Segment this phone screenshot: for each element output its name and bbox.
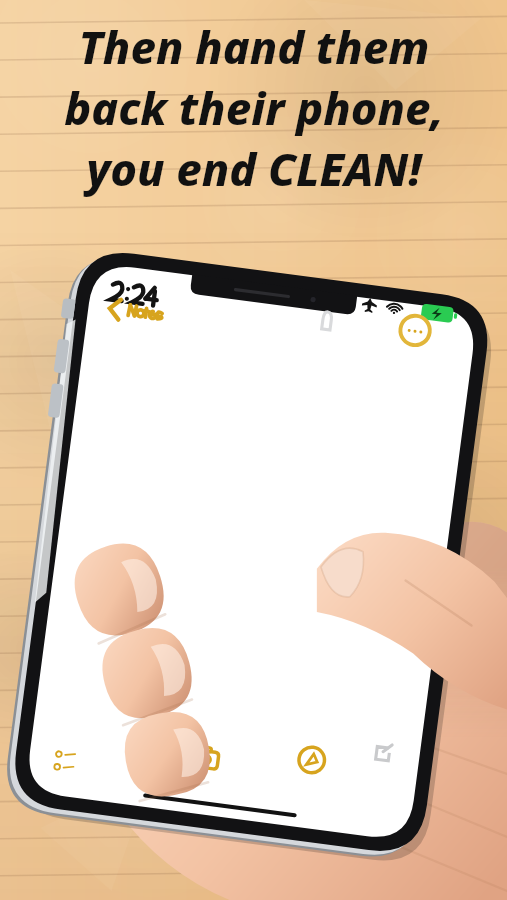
staticText: back their phone,	[64, 77, 444, 138]
staticText: Then hand them	[78, 16, 430, 77]
staticText: you end CLEAN!	[86, 138, 422, 199]
button[interactable]: Notes app on phone	[0, 0, 507, 900]
